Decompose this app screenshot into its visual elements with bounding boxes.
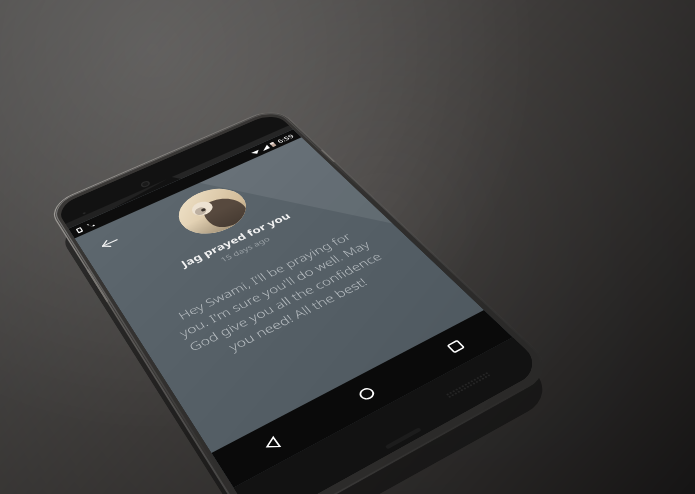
button[interactable]: Home: [308, 355, 425, 434]
button[interactable]: Back: [211, 402, 333, 488]
button[interactable]: Profile photo: [168, 180, 258, 243]
staticText: 6:59: [275, 132, 296, 145]
staticText: Jag prayed for you: [178, 210, 293, 270]
button[interactable]: Recent apps: [398, 310, 513, 384]
staticText: 15 days ago: [218, 234, 272, 264]
button[interactable]: Back: [89, 228, 130, 258]
staticText: Hey Swami, I'll be praying for you. I'm …: [154, 221, 410, 377]
